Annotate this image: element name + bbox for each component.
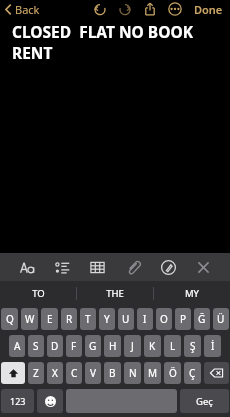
button[interactable]: CLOSED FLAT NO BOOK xyxy=(0,18,230,63)
button[interactable]: MY xyxy=(154,281,230,305)
staticText: RENT xyxy=(12,42,53,63)
staticText: O xyxy=(160,312,168,326)
staticText: E xyxy=(47,312,53,326)
button[interactable]: V xyxy=(85,362,101,384)
staticText: C xyxy=(71,366,78,380)
staticText: X xyxy=(52,366,58,380)
staticText: N xyxy=(129,366,137,380)
button[interactable]: C xyxy=(66,362,82,384)
staticText: Ü xyxy=(217,312,225,326)
button[interactable]: Backspace xyxy=(204,362,229,384)
staticText: H xyxy=(109,339,117,353)
staticText: Ğ xyxy=(198,312,206,326)
button[interactable]: I xyxy=(137,308,153,330)
staticText: T xyxy=(85,312,91,326)
button[interactable]: E xyxy=(41,308,58,330)
button[interactable]: More xyxy=(167,1,183,17)
button[interactable]: R xyxy=(61,308,77,330)
staticText: J xyxy=(131,339,134,353)
button[interactable]: T xyxy=(80,308,96,330)
button[interactable]: A xyxy=(9,335,25,357)
staticText: F xyxy=(71,339,77,353)
staticText: P xyxy=(180,312,187,326)
button[interactable]: W xyxy=(21,308,38,330)
staticText: G xyxy=(89,339,97,353)
staticText: Y xyxy=(104,312,110,326)
staticText: A xyxy=(14,339,21,353)
button[interactable]: Ü xyxy=(213,308,229,330)
staticText: Ö xyxy=(169,366,177,380)
button[interactable]: P xyxy=(175,308,191,330)
button[interactable]: Back xyxy=(0,0,46,18)
button[interactable]: Ş xyxy=(184,335,201,357)
button[interactable]: Ö xyxy=(164,362,181,384)
button[interactable]: Redo xyxy=(117,1,133,17)
staticText: Back xyxy=(15,2,40,17)
staticText: CLOSED FLAT NO BOOK xyxy=(12,21,193,42)
button[interactable]: D xyxy=(47,335,63,357)
staticText: R xyxy=(66,312,73,326)
staticText: L xyxy=(170,339,176,353)
button[interactable]: Caps lock xyxy=(1,362,25,384)
button[interactable]: L xyxy=(164,335,181,357)
button[interactable]: K xyxy=(144,335,161,357)
button[interactable]: Checklist xyxy=(51,256,73,278)
staticText: D xyxy=(51,339,59,353)
button[interactable]: Emoji xyxy=(37,389,63,413)
button[interactable]: O xyxy=(156,308,172,330)
button[interactable]: Z xyxy=(28,362,44,384)
staticText: THE xyxy=(106,287,124,300)
staticText: Geç xyxy=(196,395,213,408)
staticText: I xyxy=(143,312,147,326)
staticText: TO xyxy=(32,287,45,300)
button[interactable]: THE xyxy=(77,281,153,305)
button[interactable]: Attach xyxy=(122,256,144,278)
button[interactable]: Y xyxy=(99,308,115,330)
staticText: W xyxy=(25,312,35,326)
button[interactable]: Markup xyxy=(157,256,179,278)
button[interactable]: Text format xyxy=(16,256,38,278)
button[interactable]: Done xyxy=(191,0,226,18)
button[interactable]: X xyxy=(47,362,63,384)
staticText: B xyxy=(109,366,116,380)
button[interactable]: Share xyxy=(142,1,158,17)
button[interactable]: TO xyxy=(0,281,76,305)
button[interactable]: Q xyxy=(1,308,18,330)
button[interactable]: Geç xyxy=(180,389,229,413)
staticText: Ş xyxy=(190,339,196,353)
button[interactable]: M xyxy=(144,362,161,384)
button[interactable]: S xyxy=(28,335,44,357)
staticText: K xyxy=(149,339,156,353)
button[interactable]: Undo xyxy=(92,1,108,17)
staticText: M xyxy=(148,366,158,380)
button[interactable]: J xyxy=(124,335,141,357)
button[interactable]: 123 xyxy=(1,389,34,413)
staticText: 123 xyxy=(10,395,26,407)
staticText: İ xyxy=(211,339,215,353)
button[interactable]: Ç xyxy=(184,362,201,384)
staticText: MY xyxy=(185,287,199,300)
button[interactable]: Close keyboard xyxy=(192,256,214,278)
staticText: Done xyxy=(194,2,223,17)
staticText: Q xyxy=(6,312,14,326)
staticText: Z xyxy=(33,366,39,380)
button[interactable]: U xyxy=(118,308,134,330)
button[interactable]: Ğ xyxy=(194,308,210,330)
staticText: V xyxy=(90,366,96,380)
button[interactable]: N xyxy=(124,362,141,384)
button[interactable]: Table xyxy=(86,256,108,278)
button[interactable]: F xyxy=(66,335,82,357)
staticText: U xyxy=(122,312,130,326)
staticText: Ç xyxy=(189,366,196,380)
staticText: S xyxy=(33,339,39,353)
button[interactable]: G xyxy=(85,335,101,357)
button[interactable]: B xyxy=(104,362,121,384)
button[interactable]: İ xyxy=(204,335,221,357)
button[interactable]: H xyxy=(104,335,121,357)
